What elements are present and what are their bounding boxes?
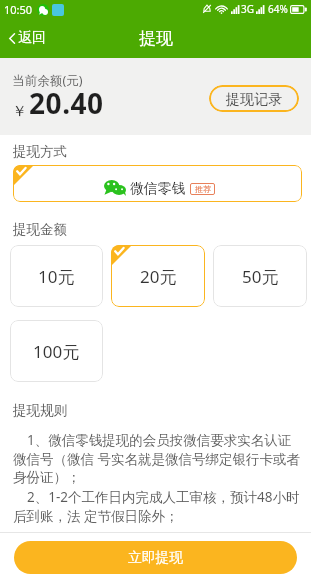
button[interactable]: 微信零钱 [13, 165, 302, 202]
staticText: 提现方式 [13, 143, 67, 160]
button[interactable]: 10元 [10, 245, 103, 307]
button[interactable]: 100元 [10, 320, 103, 382]
staticText: 100元 [33, 340, 80, 363]
staticText: 1、微信零钱提现的会员按微信要求实名认证 [27, 431, 292, 449]
button[interactable]: 提现记录 [209, 85, 299, 112]
staticText: 后到账，法 定节假日除外； [13, 507, 179, 525]
staticText: 50元 [242, 265, 279, 288]
button[interactable]: 20元 [111, 245, 205, 307]
staticText: 推荐 [195, 184, 211, 194]
staticText: 20.40 [29, 84, 104, 122]
staticText: 立即提现 [128, 549, 184, 566]
staticText: 提现规则 [13, 402, 67, 419]
staticText: 64% [268, 2, 288, 16]
staticText: 提现金额 [13, 221, 67, 238]
staticText: ￥ [12, 102, 27, 121]
staticText: 当前余额(元) [12, 72, 83, 89]
staticText: 3G [241, 2, 254, 16]
staticText: 10:50 [4, 2, 33, 17]
staticText: 微信零钱 [130, 180, 186, 197]
staticText: 微信号（微信 号实名就是微信号绑定银行卡或者 [13, 450, 301, 468]
staticText: 10元 [38, 265, 75, 288]
button[interactable]: 50元 [213, 245, 307, 307]
staticText: 提现 [139, 28, 173, 49]
staticText: 身份证）； [13, 469, 81, 486]
button[interactable]: 立即提现 [14, 541, 297, 574]
staticText: 2、1-2个工作日内完成人工审核，预计48小时 [27, 488, 300, 506]
staticText: 返回 [18, 29, 46, 47]
staticText: 提现记录 [226, 90, 283, 108]
button[interactable]: 返回 [0, 21, 58, 55]
staticText: 20元 [140, 265, 177, 288]
